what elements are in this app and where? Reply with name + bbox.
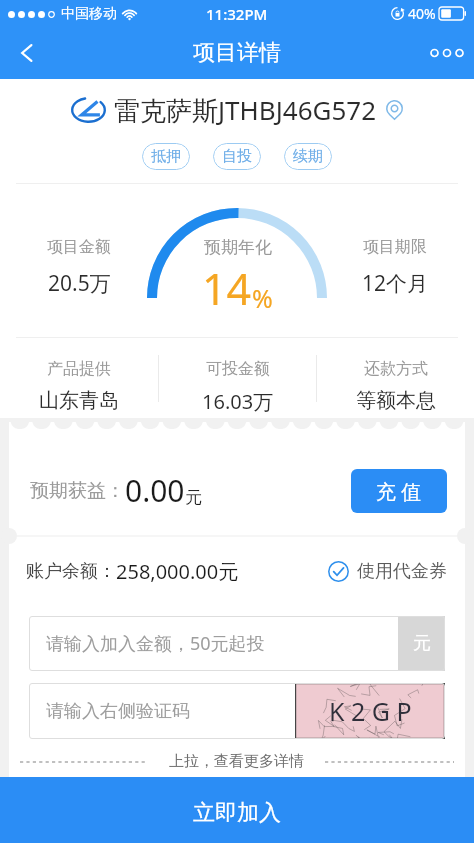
button[interactable]: 请输入加入金额，50元起投 [29,616,445,671]
staticText: 中国移动 [61,5,117,23]
staticText: 请输入右侧验证码 [46,700,190,723]
staticText: 产品提供 [47,359,111,379]
staticText: 11:32PM [206,4,268,24]
button[interactable]: Back [0,27,54,79]
staticText: 可投金额 [206,359,270,379]
button[interactable]: 立即加入 [0,777,474,843]
staticText: 12个月 [362,269,429,298]
staticText: K 2 G P [329,694,412,728]
staticText: 元 [185,487,202,508]
staticText: 16.03万 [202,388,274,415]
staticText: 充 值 [376,478,422,505]
staticText: 等额本息 [356,388,436,413]
button[interactable]: 充 值 [351,469,447,513]
staticText: 项目金额 [47,237,111,257]
staticText: 山东青岛 [39,388,119,413]
button[interactable]: 续期 [284,143,332,170]
staticText: 40% [408,4,436,23]
staticText: 预期获益： [30,479,125,503]
staticText: 立即加入 [193,799,281,827]
staticText: 续期 [293,147,323,166]
button[interactable]: Refresh captcha [295,683,445,739]
staticText: 还款方式 [364,359,428,379]
staticText: 自投 [222,147,252,166]
staticText: 项目详情 [193,39,281,67]
staticText: 抵押 [151,147,181,166]
staticText: % [252,281,273,315]
staticText: 使用代金券 [357,560,447,583]
staticText: 账户余额： [26,560,116,583]
staticText: 0.00 [125,470,185,511]
staticText: 14 [202,259,252,318]
button[interactable]: 使用代金券 [328,560,447,583]
staticText: 20.5万 [48,269,111,298]
staticText: 请输入加入金额，50元起投 [46,631,265,656]
staticText: 上拉，查看更多详情 [169,752,304,771]
staticText: 预期年化 [204,237,272,258]
button[interactable]: 自投 [213,143,261,170]
button[interactable]: 抵押 [142,143,190,170]
staticText: 258,000.00元 [116,558,239,585]
staticText: 雷克萨斯JTHBJ46G572 [114,92,377,128]
button[interactable]: More options [420,27,474,79]
staticText: 项目期限 [363,237,427,257]
staticText: 元 [413,632,431,655]
